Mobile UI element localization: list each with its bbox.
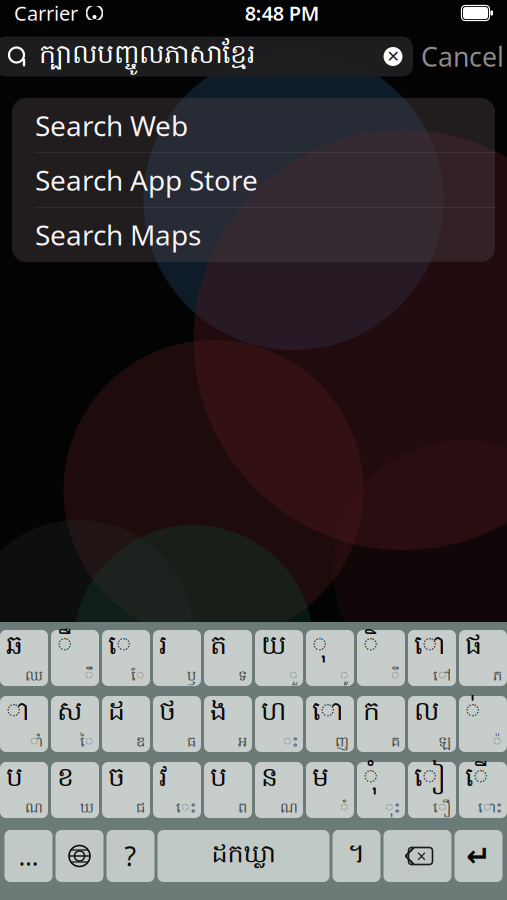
button[interactable]: ា	[0, 696, 48, 752]
staticText: ឡ	[438, 733, 451, 753]
staticText: ួ	[289, 667, 298, 687]
button[interactable]: យ	[255, 630, 303, 686]
button[interactable]: ×	[383, 830, 451, 882]
staticText: ហ	[261, 694, 286, 733]
button[interactable]: ោ	[408, 630, 456, 686]
staticText: ប	[210, 760, 227, 799]
button[interactable]: …	[4, 830, 52, 882]
button[interactable]: ហ	[255, 696, 303, 752]
staticText: ង	[210, 694, 227, 733]
staticText: ។	[347, 837, 365, 875]
staticText: ល	[414, 694, 439, 733]
staticText: ន	[261, 760, 278, 799]
staticText: ព	[238, 799, 247, 819]
button[interactable]: ៀ	[408, 762, 456, 818]
staticText: ុះ	[385, 799, 400, 819]
staticText: ម	[312, 760, 329, 799]
button[interactable]: ់	[459, 696, 507, 752]
staticText: ោ	[414, 628, 446, 667]
button[interactable]: Search App Store	[12, 153, 495, 208]
staticText: ់	[465, 694, 481, 733]
staticText: ះ	[283, 733, 298, 753]
staticText: ុ	[312, 628, 328, 667]
button[interactable]: ន	[255, 762, 303, 818]
staticText: ក	[363, 694, 380, 733]
button[interactable]: ក	[357, 696, 405, 752]
button[interactable]: Cancel	[413, 36, 507, 76]
button[interactable]: ប	[204, 762, 252, 818]
button[interactable]: ប	[0, 762, 48, 818]
button[interactable]: ិ	[357, 630, 405, 686]
button[interactable]: រ	[153, 630, 201, 686]
button[interactable]: ↵	[454, 830, 502, 882]
button[interactable]: ច	[102, 762, 150, 818]
button[interactable]: Search Web	[12, 98, 495, 153]
staticText: 8:48 PM	[245, 0, 320, 26]
staticText: Search Maps	[35, 216, 201, 253]
button[interactable]: េ	[102, 630, 150, 686]
staticText: ↵	[466, 839, 491, 873]
button[interactable]: ?	[106, 830, 154, 882]
staticText: ជ	[136, 799, 145, 819]
staticText: ខ	[57, 760, 74, 799]
staticText: ៃ	[80, 733, 94, 753]
button[interactable]: ដ	[102, 696, 150, 752]
staticText: ឌ	[136, 733, 145, 753]
staticText: ឫ	[187, 667, 196, 687]
button[interactable]: ុំ	[357, 762, 405, 818]
staticText: រ	[159, 628, 167, 667]
button[interactable]: ត	[204, 630, 252, 686]
button[interactable]: ស	[51, 696, 99, 752]
button[interactable]: ឆ	[0, 630, 48, 686]
staticText: ឺ	[57, 628, 73, 667]
button[interactable]: វ	[153, 762, 201, 818]
staticText: ាំ	[30, 733, 43, 753]
button[interactable]: ផ	[459, 630, 507, 686]
staticText: Search App Store	[35, 161, 258, 199]
staticText: ធ	[187, 733, 196, 753]
button[interactable]: Search Maps	[12, 208, 495, 262]
staticText: ី	[391, 667, 400, 687]
button[interactable]	[55, 830, 103, 882]
staticText: ុំ	[363, 760, 379, 799]
staticText: ូ	[340, 667, 349, 687]
button[interactable]: ល	[408, 696, 456, 752]
button[interactable]: ។	[332, 830, 380, 882]
staticText: Search Web	[35, 107, 188, 144]
staticText: ៉	[493, 733, 502, 753]
staticText: ✕	[386, 47, 399, 66]
button[interactable]: ុ	[306, 630, 354, 686]
staticText: ឃ	[80, 799, 94, 819]
staticText: ដកឃ្លា	[211, 838, 275, 874]
staticText: ក្បាល​បញ្ចូល​ភាសា​ខ្មែរ	[39, 37, 255, 76]
staticText: េះ	[176, 799, 196, 819]
staticText: ?	[124, 838, 136, 874]
staticText: ើ	[465, 760, 489, 799]
staticText: ឈ	[25, 667, 43, 687]
staticText: អ	[238, 733, 247, 753]
staticText: Carrier	[14, 0, 78, 26]
button[interactable]: ថ	[153, 696, 201, 752]
staticText: ៅ	[433, 667, 451, 687]
staticText: ា	[6, 694, 30, 733]
staticText: ស	[57, 694, 82, 733]
button[interactable]: ខ	[51, 762, 99, 818]
staticText: ណ	[25, 799, 43, 819]
staticText: ៀ	[414, 760, 446, 799]
staticText: ឆ	[6, 628, 23, 667]
staticText: ច	[108, 760, 125, 799]
button[interactable]: ម	[306, 762, 354, 818]
button[interactable]: Clear text	[373, 36, 413, 76]
staticText: ភ	[493, 667, 502, 687]
staticText: Cancel	[421, 39, 504, 74]
button[interactable]: ង	[204, 696, 252, 752]
button[interactable]: ឺ	[51, 630, 99, 686]
staticText: ំ	[340, 799, 349, 819]
staticText: ិ	[363, 628, 379, 667]
button[interactable]: ដកឃ្លា	[157, 830, 329, 882]
button[interactable]: ើ	[459, 762, 507, 818]
staticText: ដ	[108, 694, 125, 733]
button[interactable]: ោ	[306, 696, 354, 752]
staticText: េ	[108, 628, 132, 667]
staticText: ទ	[238, 667, 247, 687]
